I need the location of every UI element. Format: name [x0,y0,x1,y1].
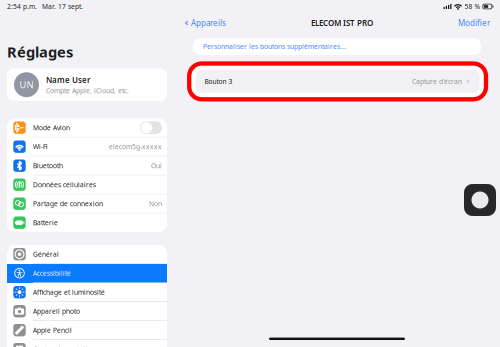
button[interactable]: Données cellulaires [7,175,167,194]
staticText: Apple Pencil [33,326,72,335]
staticText: Accessibilité [33,269,71,278]
button[interactable]: Wi-Fi [7,137,167,156]
staticText: UN [19,78,33,91]
button[interactable]: Accessibilité [7,264,167,283]
staticText: Modifier [458,18,490,28]
staticText: ELECOM IST PRO [311,18,373,28]
staticText: Compte Apple, iCloud, etc. [46,86,129,95]
button[interactable]: Bouton 3 [189,63,486,99]
staticText: elecom5g-xxxxx [109,142,162,151]
staticText: Bluetooth [33,161,63,170]
button[interactable]: Général [7,245,167,264]
staticText: Capture d'écran [412,77,462,86]
button[interactable]: Appareils [184,18,226,28]
staticText: Réglages [7,42,73,61]
staticText: Personnaliser les boutons supplémentaire… [203,42,346,51]
button[interactable]: Batterie [7,213,167,232]
button[interactable]: Centre de contrôle [7,340,167,347]
staticText: Général [33,250,59,259]
staticText: Mode Avion [33,123,70,132]
staticText: Partage de connexion [33,199,103,208]
staticText: Affichage et luminosité [33,288,105,297]
staticText: Oui [151,161,162,170]
button[interactable]: AssistiveTouch [464,184,496,216]
staticText: Non [149,199,162,208]
staticText: Batterie [33,218,58,227]
button[interactable]: Mode Avion [7,118,167,137]
button[interactable]: Modifier [458,18,490,28]
staticText: 58 % [464,2,480,11]
button[interactable]: Partage de connexion [7,194,167,213]
staticText: Centre de contrôle [33,345,92,347]
button[interactable]: Appareil photo [7,302,167,321]
staticText: Mar. 17 sept. [42,2,83,11]
button[interactable]: UN [7,68,167,101]
staticText: Bouton 3 [205,77,233,86]
staticText: Wi-Fi [33,142,48,151]
button[interactable]: Bluetooth [7,156,167,175]
button[interactable]: Apple Pencil [7,321,167,340]
staticText: Données cellulaires [33,180,96,189]
staticText: Name User [46,74,90,85]
staticText: Appareil photo [33,307,80,316]
button[interactable]: Personnaliser les boutons supplémentaire… [193,38,481,55]
staticText: 2:54 p.m. [7,2,37,11]
button[interactable]: Affichage et luminosité [7,283,167,302]
staticText: Appareils [191,18,226,28]
